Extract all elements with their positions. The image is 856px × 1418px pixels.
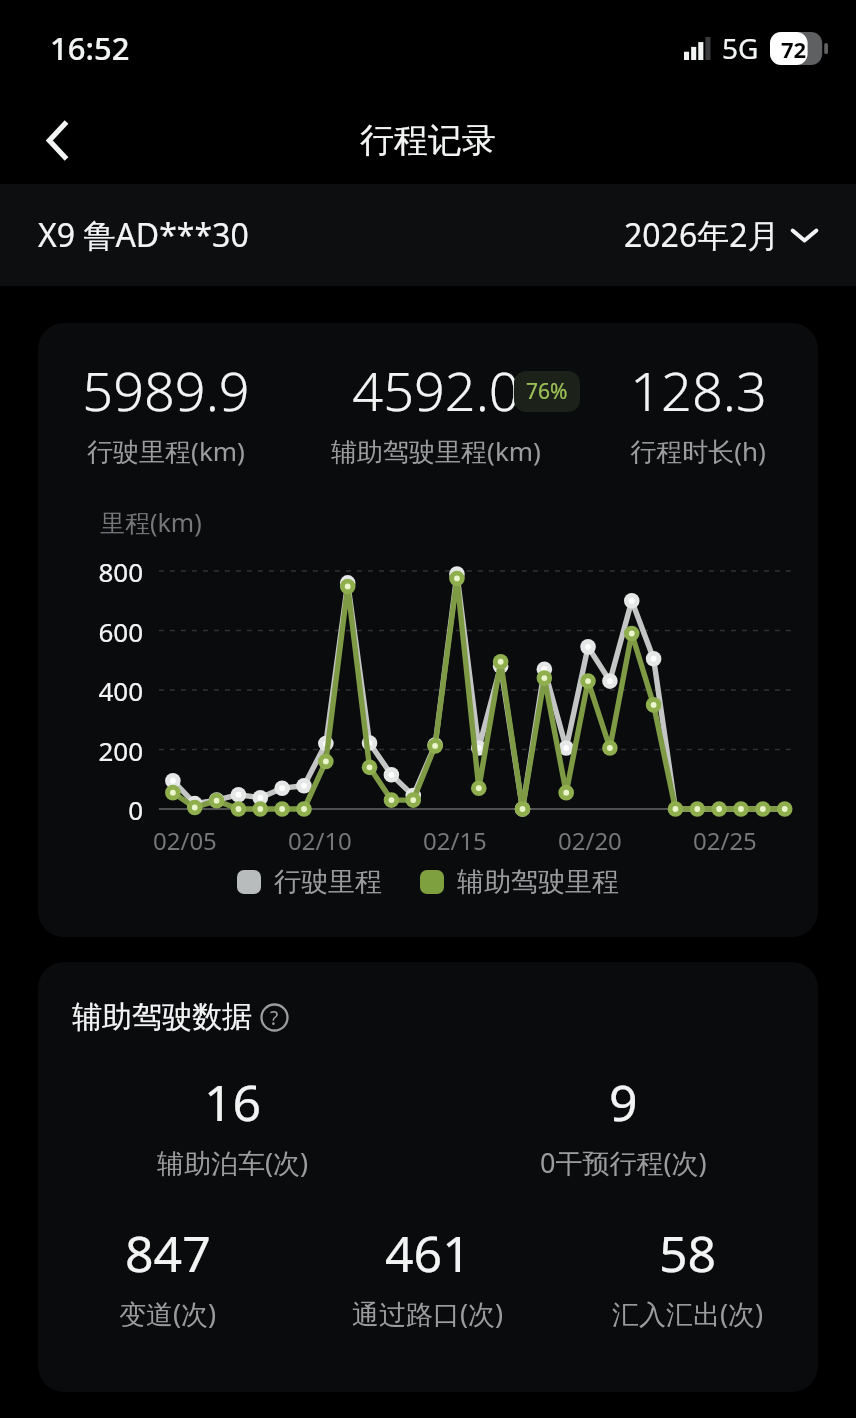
staticText: 行程记录 (360, 119, 496, 162)
staticText: 02/15 (423, 824, 487, 857)
staticText: 800 (38, 554, 143, 589)
staticText: 5G (722, 29, 759, 67)
staticText: 变道(次) (119, 1295, 217, 1332)
staticText: X9 鲁AD***30 (38, 213, 249, 257)
staticText: 400 (38, 673, 143, 708)
staticText: 72 (781, 34, 807, 64)
button[interactable]: 辅助驾驶里程 (420, 865, 619, 899)
staticText: 0干预行程(次) (540, 1144, 707, 1181)
staticText: 行驶里程(km) (87, 433, 245, 469)
staticText: 16 (204, 1068, 262, 1136)
staticText: 里程(km) (100, 505, 202, 539)
staticText: 76% (526, 377, 568, 406)
staticText: 58 (659, 1219, 717, 1287)
staticText: 02/25 (693, 824, 757, 857)
staticText: 辅助泊车(次) (157, 1144, 309, 1181)
staticText: 128.3 (630, 353, 767, 427)
staticText: ? (270, 1005, 279, 1031)
staticText: 5989.9 (82, 353, 250, 427)
staticText: 0 (38, 792, 143, 827)
staticText: 02/05 (153, 824, 217, 857)
staticText: 辅助驾驶里程(km) (331, 433, 541, 469)
button[interactable]: 辅助驾驶数据 (38, 962, 818, 1392)
staticText: 02/20 (558, 824, 622, 857)
staticText: 辅助驾驶里程 (457, 865, 619, 899)
button[interactable]: 2026年2月 (624, 213, 818, 257)
staticText: 02/10 (288, 824, 352, 857)
staticText: 600 (38, 614, 143, 649)
staticText: 16:52 (50, 27, 130, 69)
staticText: 辅助驾驶数据 (72, 998, 252, 1036)
staticText: 汇入汇出(次) (612, 1295, 764, 1332)
staticText: 通过路口(次) (352, 1295, 504, 1332)
staticText: 847 (125, 1219, 211, 1287)
button[interactable]: 辅助驾驶数据 (72, 998, 289, 1036)
button[interactable]: 行驶里程 (237, 865, 382, 899)
staticText: 4592.0 (352, 353, 520, 427)
button[interactable]: Back (26, 108, 90, 172)
staticText: 行程时长(h) (630, 433, 766, 469)
other: Help (260, 1003, 289, 1032)
staticText: 200 (38, 733, 143, 768)
button[interactable]: 5989.9 (38, 323, 818, 937)
staticText: 2026年2月 (624, 213, 780, 257)
staticText: 行驶里程 (274, 865, 382, 899)
staticText: 9 (609, 1068, 638, 1136)
staticText: 461 (385, 1219, 471, 1287)
